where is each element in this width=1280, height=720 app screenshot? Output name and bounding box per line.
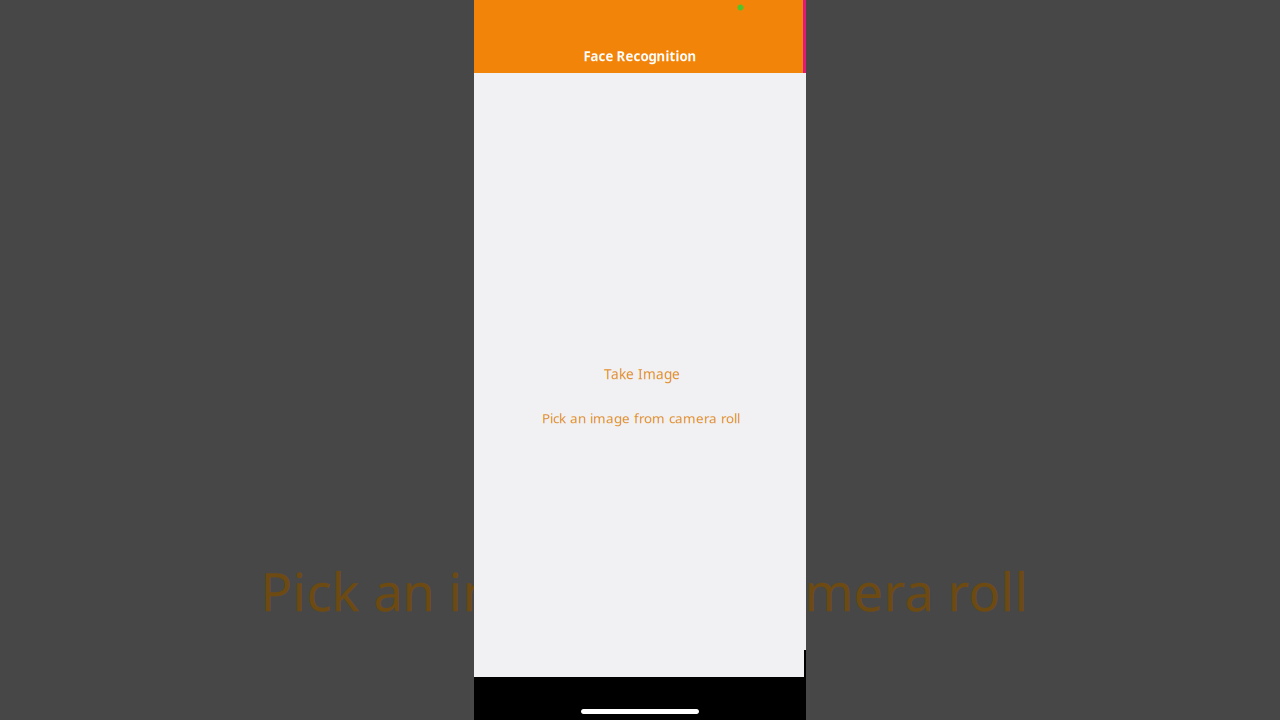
staticText: Pick an image from camera roll xyxy=(260,555,1028,627)
staticText: Face Recognition xyxy=(583,47,696,65)
button[interactable]: Pick an image from camera roll xyxy=(474,408,806,428)
staticText: Take Image xyxy=(604,365,680,383)
button[interactable]: Take Image xyxy=(474,364,806,384)
staticText: Pick an image from camera roll xyxy=(542,409,740,427)
